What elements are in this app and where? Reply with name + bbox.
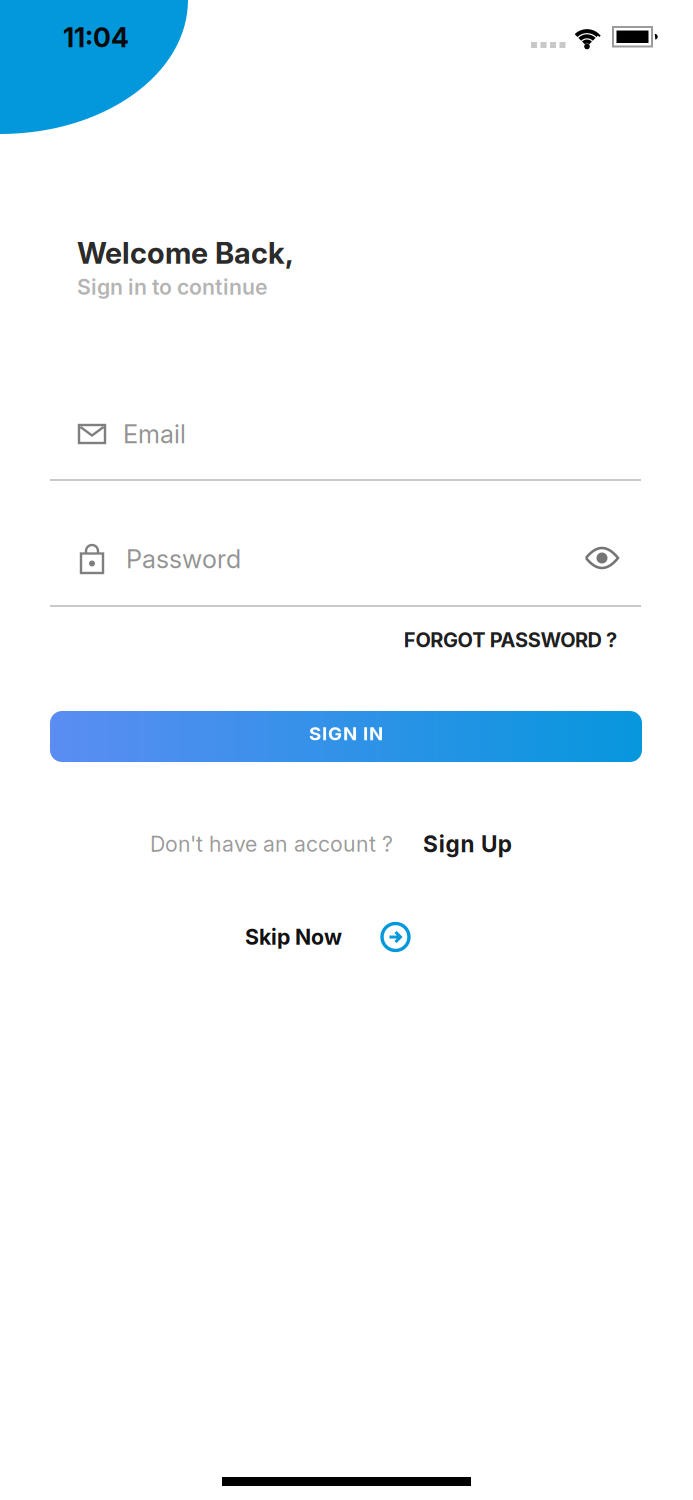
staticText: Password [126, 544, 241, 574]
staticText: Don't have an account ? [150, 831, 393, 857]
button[interactable]: Skip Now [245, 921, 411, 952]
staticText: Email [123, 419, 186, 449]
button[interactable]: FORGOT PASSWORD ? [404, 628, 617, 652]
button[interactable]: Email [50, 389, 641, 481]
button[interactable]: SIGN IN [50, 711, 642, 762]
staticText: Sign Up [423, 831, 512, 857]
staticText: 11:04 [63, 22, 129, 53]
staticText: Welcome Back, [77, 236, 294, 270]
button[interactable] [580, 540, 624, 576]
button[interactable]: Password [50, 513, 641, 607]
staticText: SIGN IN [309, 722, 383, 744]
staticText: Sign in to continue [77, 274, 268, 300]
staticText: FORGOT PASSWORD ? [404, 628, 617, 652]
button[interactable]: Sign Up [423, 831, 512, 857]
staticText: Skip Now [245, 924, 342, 950]
